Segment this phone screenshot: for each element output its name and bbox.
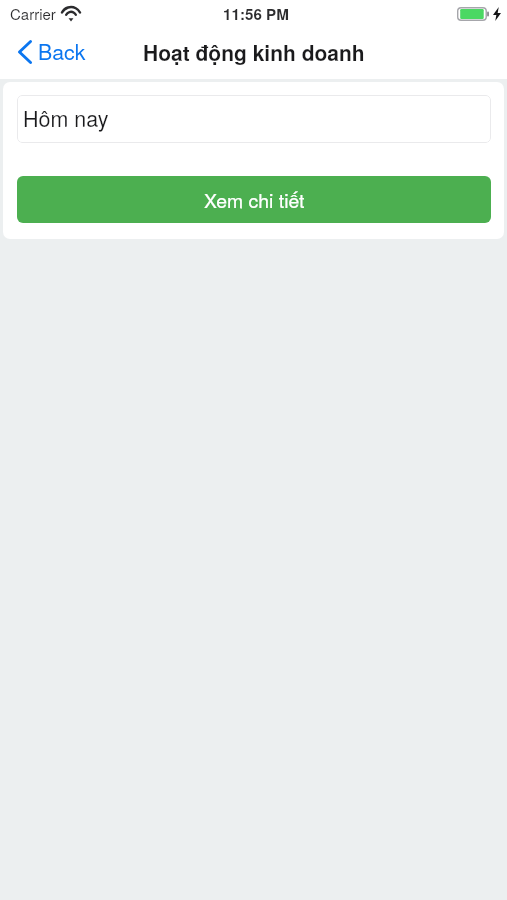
other: Back: [18, 40, 32, 64]
staticText: Xem chi tiết: [204, 186, 305, 214]
staticText: Hoạt động kinh doanh: [143, 37, 365, 67]
other: Battery full: [457, 7, 489, 21]
button[interactable]: Back: [0, 31, 98, 72]
button[interactable]: Xem chi tiết: [17, 176, 491, 223]
staticText: Carrier: [10, 3, 56, 24]
button[interactable]: Hôm nay: [17, 95, 491, 143]
staticText: Hôm nay: [23, 102, 109, 133]
staticText: 11:56 PM: [223, 3, 289, 25]
staticText: Back: [38, 36, 86, 67]
other: Charging: [493, 7, 501, 21]
other: Wi-Fi signal: [62, 7, 80, 21]
